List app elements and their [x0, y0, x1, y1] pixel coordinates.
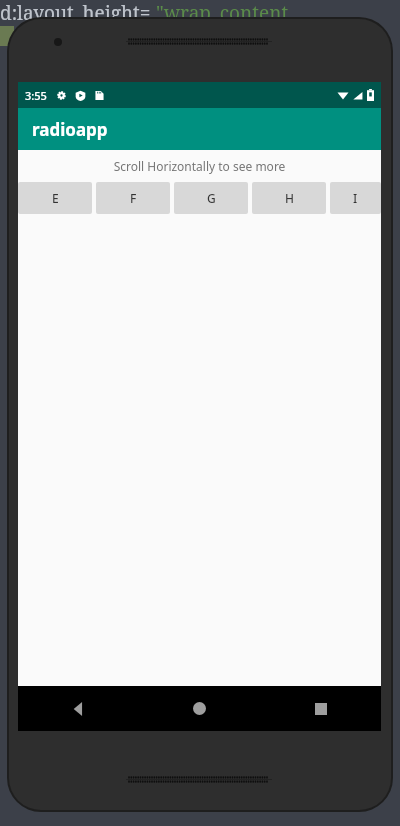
button[interactable]: Home — [139, 686, 260, 731]
staticText: 3:55 — [25, 88, 47, 103]
button[interactable]: G — [174, 182, 248, 214]
staticText: "wrap_content — [151, 0, 289, 22]
button[interactable]: H — [252, 182, 326, 214]
button[interactable]: E — [18, 182, 92, 214]
button[interactable]: radioapp — [18, 108, 381, 150]
button[interactable]: Back — [18, 686, 139, 731]
staticText: Scroll Horizontally to see more — [18, 158, 381, 174]
button[interactable]: F — [96, 182, 170, 214]
button[interactable]: I — [330, 182, 381, 214]
staticText: G — [207, 190, 216, 206]
staticText: d:layout_height= — [0, 0, 151, 22]
button[interactable]: Recent apps — [260, 686, 381, 731]
staticText: I — [353, 190, 358, 206]
staticText: F — [130, 190, 137, 206]
staticText: H — [285, 190, 294, 206]
staticText: radioapp — [32, 118, 108, 141]
staticText: E — [52, 190, 59, 206]
